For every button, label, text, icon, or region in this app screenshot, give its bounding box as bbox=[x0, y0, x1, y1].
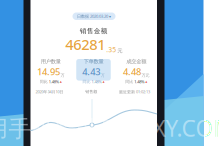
staticText: 同比 bbox=[125, 79, 133, 84]
button[interactable]: 日数据 2020.03.20 ▾ bbox=[72, 12, 115, 20]
staticText: 万 bbox=[60, 73, 64, 78]
staticText: 用户数量 bbox=[41, 58, 61, 65]
staticText: 成交金额 bbox=[126, 58, 146, 65]
staticText: 用手机精选BYJSJXY.COM bbox=[0, 113, 219, 143]
staticText: 元 bbox=[117, 47, 122, 54]
staticText: 日数据 2020.03.20 ▾ bbox=[77, 14, 111, 19]
staticText: ▲ bbox=[145, 80, 147, 83]
staticText: 1.48% bbox=[49, 79, 59, 84]
button[interactable]: 用户数量 bbox=[33, 59, 68, 81]
staticText: ▲ bbox=[102, 80, 104, 83]
staticText: 4.43 bbox=[82, 65, 100, 78]
staticText: 同比 bbox=[40, 79, 48, 84]
staticText: 14.95 bbox=[37, 65, 60, 78]
staticText: 46281 bbox=[65, 34, 105, 54]
staticText: 4.48 bbox=[123, 65, 141, 78]
staticText: 2020年04月10日 bbox=[35, 89, 63, 94]
staticText: 1.48% bbox=[91, 79, 101, 84]
staticText: 万 bbox=[101, 73, 105, 78]
button[interactable]: 下单数量 bbox=[76, 59, 111, 81]
staticText: 最近更新 01:02:13 bbox=[119, 89, 150, 94]
staticText: .35 bbox=[106, 45, 116, 54]
staticText: 1.48% bbox=[134, 79, 144, 84]
staticText: 下单数量 bbox=[83, 58, 103, 65]
staticText: 销售金额 bbox=[80, 27, 108, 35]
staticText: 同比 bbox=[82, 79, 90, 84]
button[interactable]: 成交金额 bbox=[119, 59, 153, 81]
staticText: ▲ bbox=[60, 80, 62, 83]
staticText: 销售额 bbox=[85, 89, 97, 94]
staticText: 万元 bbox=[141, 73, 149, 78]
